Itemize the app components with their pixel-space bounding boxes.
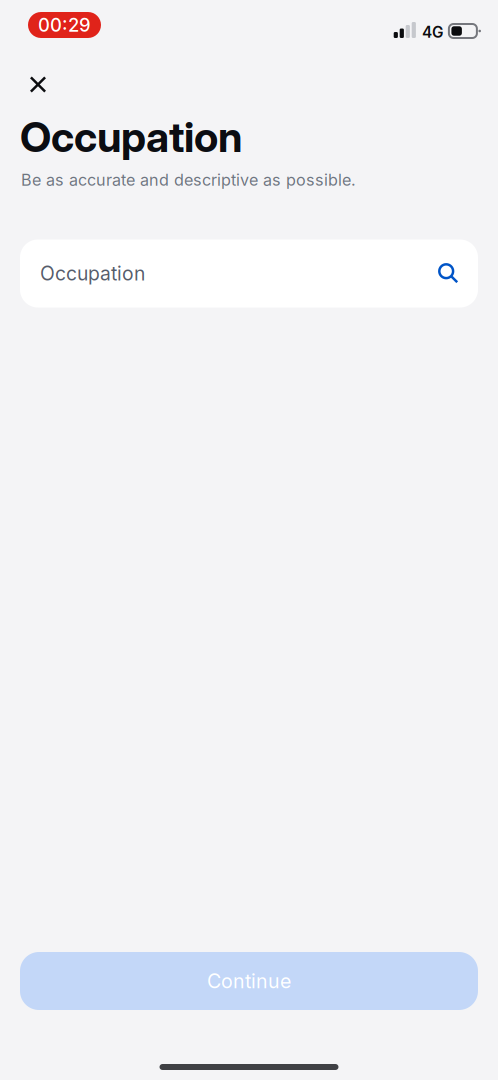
staticText: 00:29 bbox=[38, 14, 91, 36]
button[interactable]: Close bbox=[16, 62, 60, 106]
button[interactable]: Occupation bbox=[20, 239, 478, 307]
staticText: Occupation bbox=[20, 111, 242, 162]
staticText: Be as accurate and descriptive as possib… bbox=[21, 170, 356, 189]
staticText: Continue bbox=[207, 969, 291, 993]
button[interactable]: Continue bbox=[20, 952, 478, 1010]
staticText: 4G bbox=[422, 23, 443, 41]
staticText: Occupation bbox=[40, 262, 145, 285]
